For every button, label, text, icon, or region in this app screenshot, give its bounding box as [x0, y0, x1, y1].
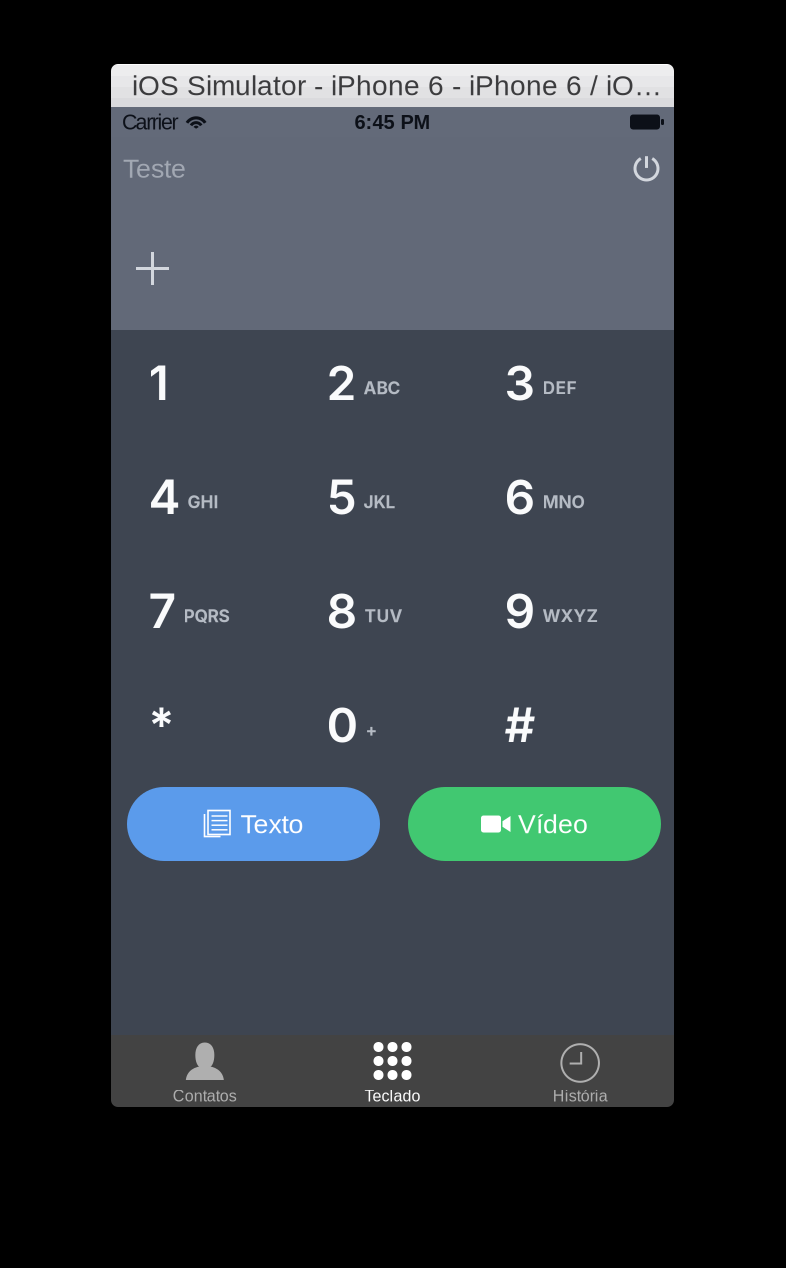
button[interactable]: História — [486, 1035, 674, 1107]
staticText: Vídeo — [518, 809, 588, 839]
staticText: WXYZ — [542, 605, 598, 626]
staticText: 7 — [148, 582, 176, 640]
staticText: 2 — [326, 354, 356, 412]
staticText: 9 — [504, 582, 535, 640]
button[interactable]: 1 — [125, 330, 303, 444]
button[interactable]: Contatos — [111, 1035, 299, 1107]
staticText: 3 — [504, 354, 535, 412]
staticText: Texto — [240, 809, 303, 839]
staticText: JKL — [363, 491, 395, 512]
staticText: GHI — [187, 491, 218, 512]
staticText: ABC — [363, 377, 400, 398]
staticText: Teste — [123, 154, 186, 183]
staticText: # — [504, 696, 535, 754]
staticText: TUV — [364, 605, 402, 626]
button[interactable]: Teclado — [299, 1035, 486, 1107]
staticText: iOS Simulator - iPhone 6 - iPhone 6 / iO… — [132, 70, 662, 101]
button[interactable]: 9 — [481, 558, 659, 672]
staticText: DEF — [542, 377, 576, 398]
staticText: História — [553, 1087, 608, 1105]
button[interactable]: Texto — [127, 787, 380, 861]
staticText: Carrier — [122, 110, 179, 134]
staticText: Teclado — [364, 1087, 420, 1105]
button[interactable]: 3 — [481, 330, 659, 444]
button[interactable]: 4 — [125, 444, 303, 558]
staticText: 1 — [148, 354, 168, 412]
staticText: 6 — [504, 468, 535, 526]
button[interactable]: Adicionar — [111, 242, 185, 295]
button[interactable]: 8 — [303, 558, 481, 672]
button[interactable]: Desligar — [619, 148, 674, 189]
staticText: 8 — [326, 582, 357, 640]
staticText: 0 — [326, 696, 358, 754]
button[interactable]: # — [481, 672, 659, 786]
staticText: PQRS — [183, 605, 229, 626]
button[interactable]: * — [125, 672, 303, 786]
button[interactable]: 0 — [303, 672, 481, 786]
button[interactable]: 6 — [481, 444, 659, 558]
staticText: 6:45 PM — [354, 111, 430, 133]
staticText: Contatos — [173, 1087, 237, 1105]
button[interactable]: Vídeo — [408, 787, 661, 861]
staticText: 5 — [326, 468, 356, 526]
staticText: * — [148, 696, 174, 754]
button[interactable]: 2 — [303, 330, 481, 444]
button[interactable]: 7 — [125, 558, 303, 672]
staticText: MNO — [542, 491, 584, 512]
staticText: 4 — [148, 468, 180, 526]
staticText: + — [365, 719, 377, 740]
button[interactable]: 5 — [303, 444, 481, 558]
